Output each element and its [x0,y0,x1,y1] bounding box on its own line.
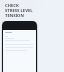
staticText: CHECK STRESS LEVEL TENSION [5,3,33,18]
